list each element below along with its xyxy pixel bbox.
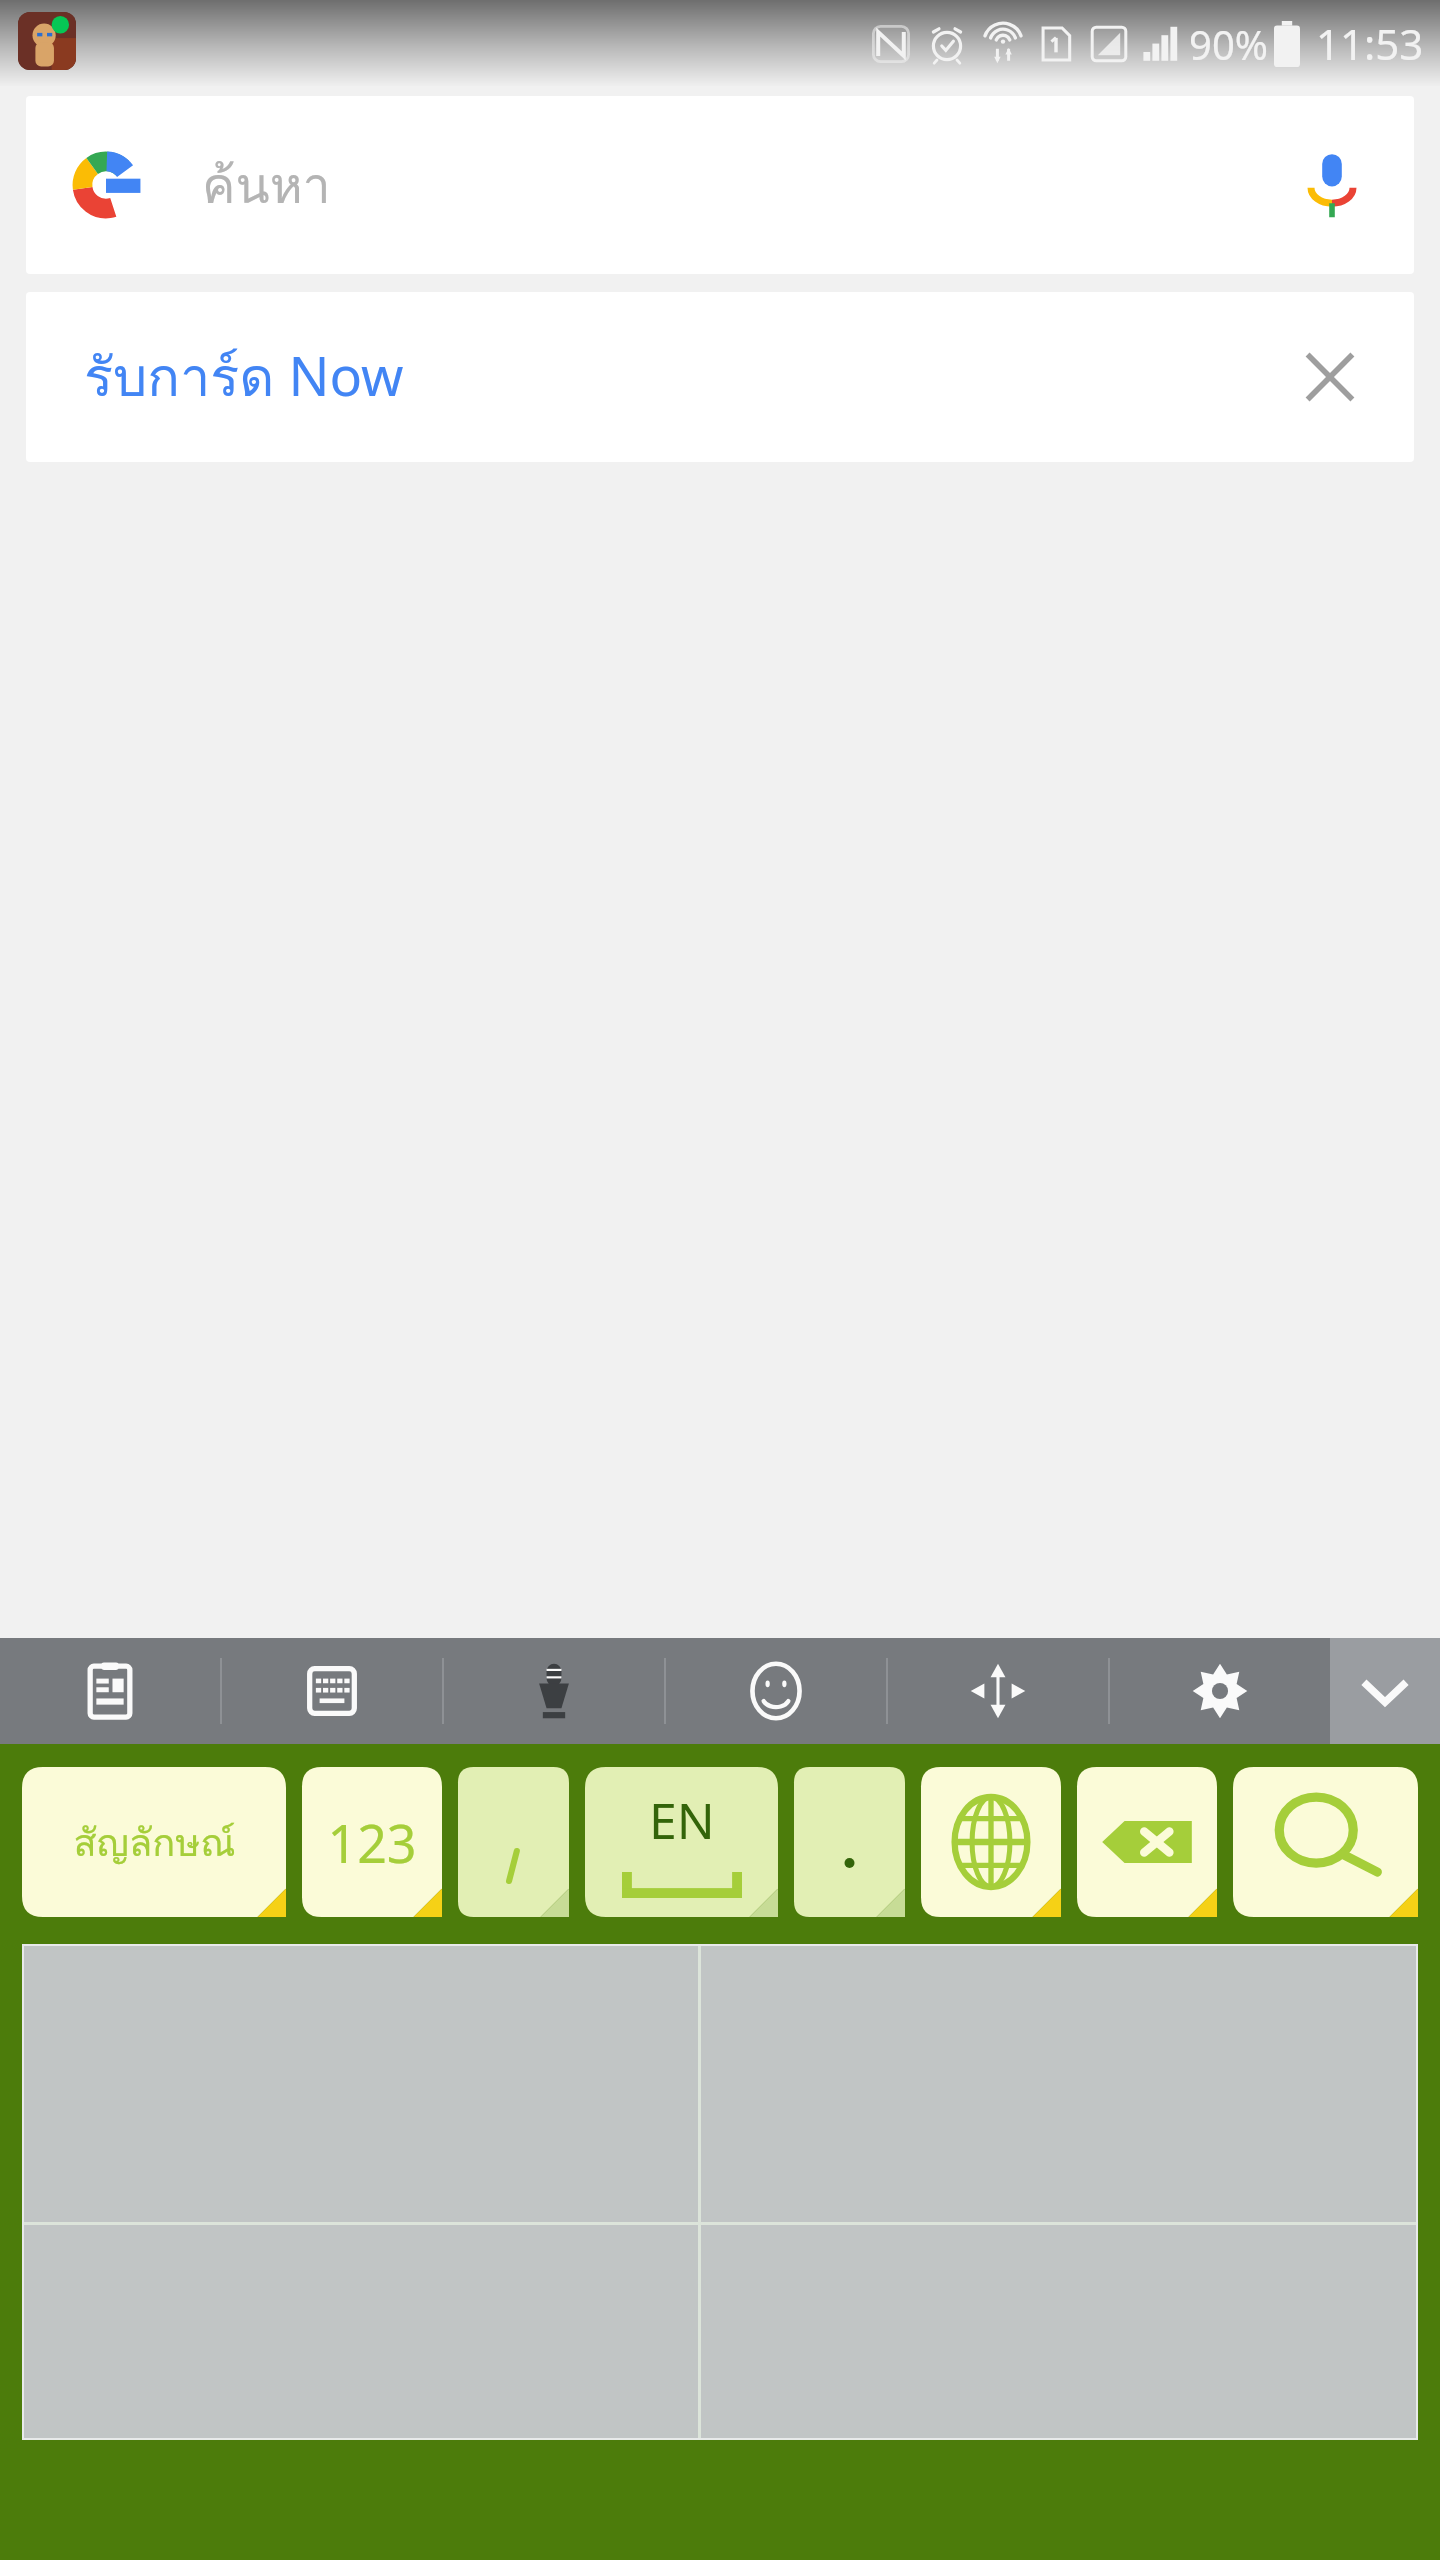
staticText: EN (649, 1786, 715, 1854)
button[interactable]: Search (1233, 1767, 1418, 1917)
button[interactable]: Voice input (444, 1638, 664, 1744)
button[interactable]: Settings (1110, 1638, 1330, 1744)
button[interactable]: Hide keyboard (1330, 1638, 1440, 1744)
button[interactable]: Space, English (585, 1767, 778, 1917)
button[interactable]: Comma (458, 1767, 569, 1917)
button[interactable]: Voice search (1292, 145, 1372, 225)
staticText: รับการ์ด Now (84, 334, 404, 420)
button[interactable]: ค้นหา (26, 96, 1414, 274)
staticText: 11:53 (1316, 15, 1424, 72)
staticText: สัญลักษณ์ (73, 1812, 236, 1872)
button[interactable]: Backspace (1077, 1767, 1217, 1917)
button[interactable]: Keyboard layout (222, 1638, 442, 1744)
button[interactable]: Period (794, 1767, 905, 1917)
button[interactable]: Dismiss (1288, 335, 1372, 419)
button[interactable]: Move cursor (888, 1638, 1108, 1744)
button[interactable]: 123 (302, 1767, 442, 1917)
staticText: ค้นหา (202, 146, 331, 225)
button[interactable]: สัญลักษณ์ (22, 1767, 286, 1917)
staticText: 90% (1189, 17, 1268, 71)
button[interactable]: Change language (921, 1767, 1061, 1917)
button[interactable]: Clipboard (0, 1638, 220, 1744)
staticText: 123 (327, 1807, 417, 1878)
button[interactable]: Emoji (666, 1638, 886, 1744)
button[interactable]: รับการ์ด Now (26, 292, 1414, 462)
